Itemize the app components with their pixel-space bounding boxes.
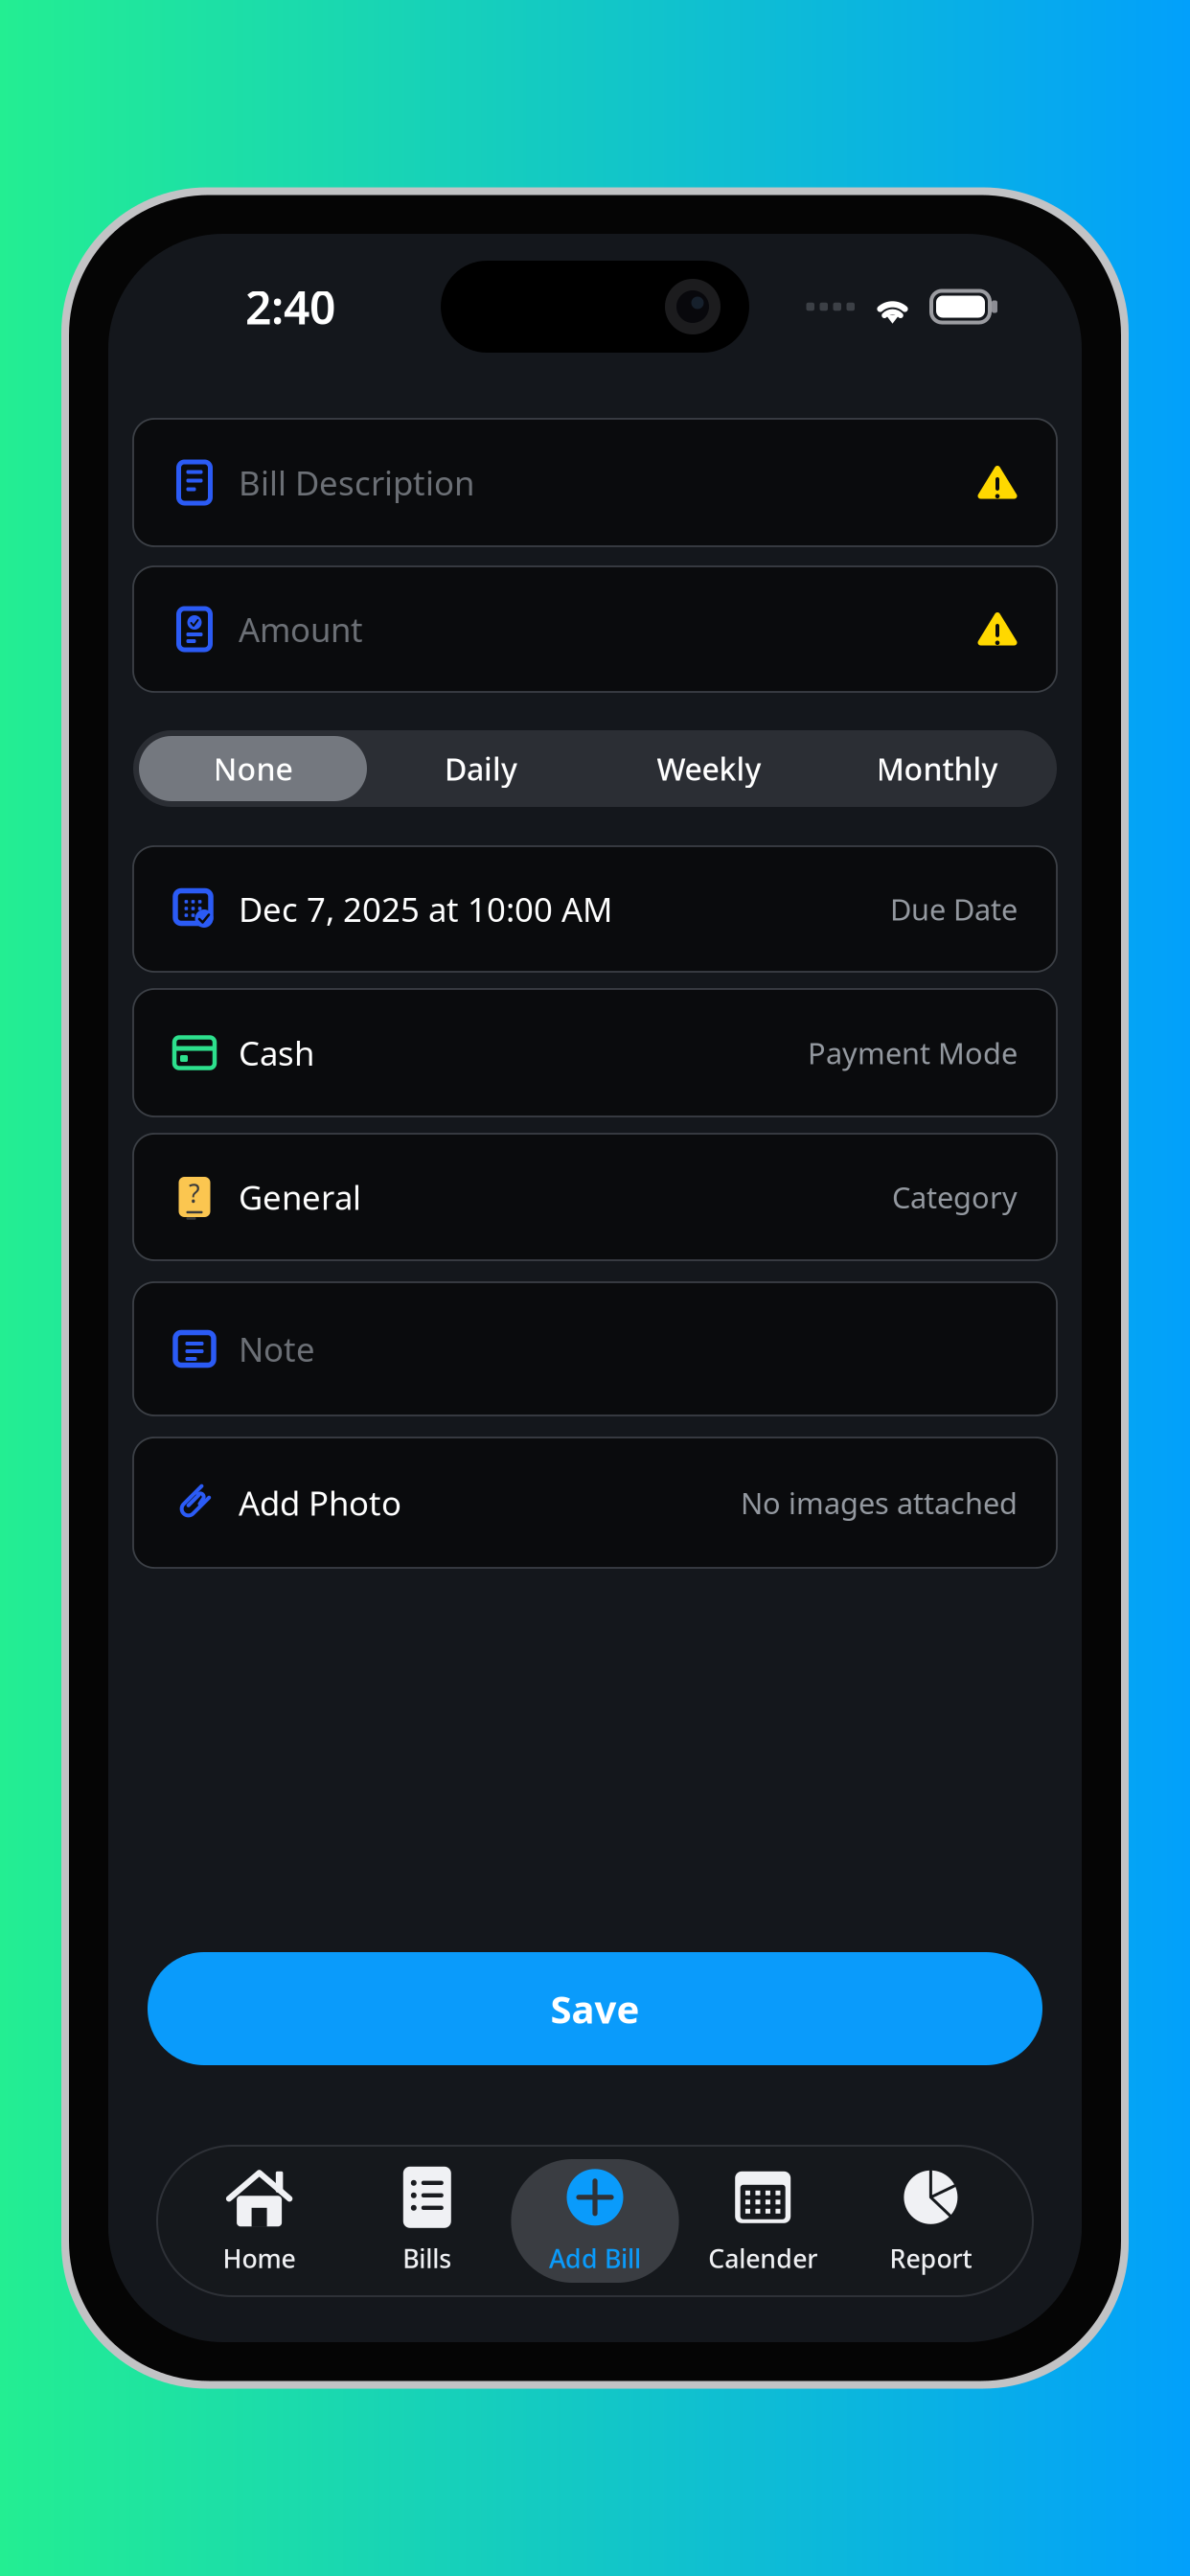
- button[interactable]: Add Photo: [133, 1437, 1057, 1568]
- button[interactable]: Monthly: [823, 736, 1051, 801]
- button[interactable]: Amount: [133, 566, 1057, 692]
- staticText: Payment Mode: [808, 1033, 1018, 1072]
- staticText: Save: [550, 1983, 640, 2034]
- staticText: Bill Description: [239, 460, 474, 505]
- button[interactable]: Note: [133, 1282, 1057, 1415]
- button[interactable]: Weekly: [595, 736, 823, 801]
- button[interactable]: Add Bill: [511, 2159, 679, 2283]
- button[interactable]: None: [139, 736, 367, 801]
- staticText: Weekly: [657, 748, 761, 789]
- staticText: Category: [892, 1177, 1018, 1216]
- staticText: Cash: [239, 1031, 314, 1075]
- button[interactable]: Bills: [343, 2159, 511, 2283]
- button[interactable]: Daily: [367, 736, 595, 801]
- staticText: None: [213, 748, 293, 789]
- button[interactable]: Dec 7, 2025 at 10:00 AM: [133, 846, 1057, 972]
- staticText: 2:40: [245, 276, 335, 337]
- button[interactable]: Bill Description: [133, 419, 1057, 546]
- staticText: ?: [189, 1176, 200, 1210]
- staticText: Home: [223, 2241, 296, 2275]
- button[interactable]: Home: [175, 2159, 343, 2283]
- staticText: Monthly: [876, 748, 998, 789]
- staticText: Bills: [403, 2241, 452, 2275]
- staticText: General: [239, 1175, 361, 1219]
- staticText: Daily: [445, 748, 517, 789]
- button[interactable]: Save: [148, 1952, 1042, 2065]
- staticText: Due Date: [890, 889, 1018, 928]
- staticText: Add Bill: [549, 2241, 641, 2275]
- staticText: Note: [239, 1327, 315, 1371]
- staticText: Report: [890, 2241, 972, 2275]
- button[interactable]: Calender: [679, 2159, 847, 2283]
- button[interactable]: ?: [133, 1134, 1057, 1260]
- staticText: Calender: [708, 2241, 817, 2275]
- button[interactable]: Cash: [133, 989, 1057, 1116]
- staticText: Dec 7, 2025 at 10:00 AM: [239, 887, 612, 931]
- staticText: Add Photo: [239, 1481, 401, 1525]
- staticText: No images attached: [741, 1483, 1018, 1522]
- staticText: Amount: [239, 607, 363, 651]
- button[interactable]: Report: [847, 2159, 1015, 2283]
